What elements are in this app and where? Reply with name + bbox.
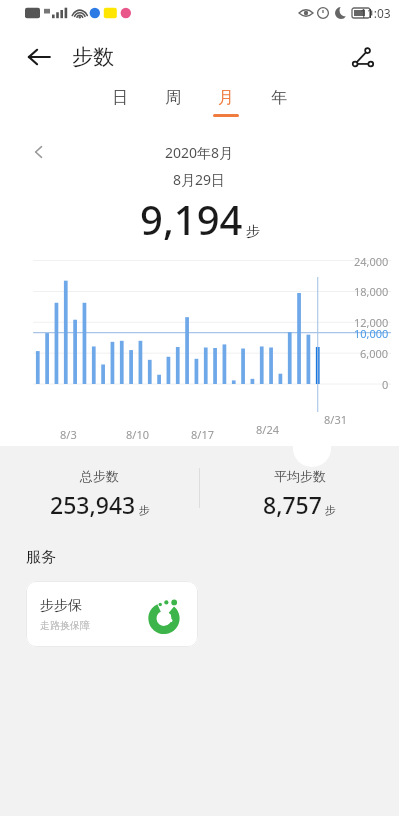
staticText: 月 bbox=[218, 88, 234, 108]
staticText: 步 bbox=[325, 503, 336, 517]
staticText: 253,943 bbox=[50, 489, 136, 520]
staticText: 8/17 bbox=[191, 427, 214, 442]
staticText: 平均步数 bbox=[274, 468, 326, 484]
staticText: 18,000 bbox=[354, 284, 389, 299]
button[interactable]: 月 bbox=[200, 88, 252, 134]
staticText: 步 bbox=[246, 223, 260, 241]
staticText: 8月29日 bbox=[173, 170, 226, 189]
staticText: 日 bbox=[112, 88, 128, 108]
button[interactable]: Share bbox=[341, 36, 383, 78]
staticText: 2020年8月 bbox=[165, 143, 234, 162]
button[interactable]: 平均步数 bbox=[200, 468, 399, 520]
staticText: 10,000 bbox=[354, 326, 389, 341]
staticText: 12,000 bbox=[354, 315, 389, 330]
button[interactable]: 日 bbox=[94, 88, 146, 134]
staticText: 8/24 bbox=[256, 422, 279, 437]
staticText: 步数 bbox=[72, 44, 114, 70]
staticText: 年 bbox=[271, 88, 287, 108]
staticText: 8/10 bbox=[126, 427, 149, 442]
staticText: 步步保 bbox=[40, 597, 82, 615]
staticText: 24,000 bbox=[354, 254, 389, 269]
staticText: 8/31 bbox=[324, 412, 347, 427]
staticText: 8/3 bbox=[60, 427, 77, 442]
staticText: 总步数 bbox=[80, 468, 119, 484]
button[interactable]: 周 bbox=[147, 88, 199, 134]
staticText: 周 bbox=[165, 88, 181, 108]
staticText: 0 bbox=[382, 377, 389, 392]
staticText: 9,194 bbox=[140, 192, 243, 246]
button[interactable]: 步步保 bbox=[26, 581, 198, 647]
staticText: 走路换保障 bbox=[40, 619, 90, 632]
button[interactable]: Back bbox=[18, 36, 60, 78]
staticText: 8,757 bbox=[263, 489, 322, 520]
staticText: 步 bbox=[139, 503, 150, 517]
button[interactable]: Previous month bbox=[22, 135, 56, 169]
staticText: 6,000 bbox=[360, 346, 389, 361]
button[interactable]: 年 bbox=[253, 88, 305, 134]
button[interactable]: 总步数 bbox=[0, 468, 199, 520]
staticText: 服务 bbox=[26, 548, 56, 567]
staticText: 11:03 bbox=[360, 5, 391, 21]
